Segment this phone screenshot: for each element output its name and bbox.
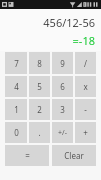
- button[interactable]: Clear: [52, 145, 96, 166]
- button[interactable]: -: [75, 99, 96, 120]
- staticText: 6: [60, 81, 65, 92]
- staticText: 3: [60, 104, 65, 115]
- button[interactable]: 456/12-56: [0, 9, 101, 51]
- other: Calculator: [0, 0, 101, 180]
- button[interactable]: /: [75, 52, 96, 74]
- staticText: 5: [37, 81, 42, 92]
- button[interactable]: 5: [29, 76, 50, 97]
- staticText: 0: [14, 127, 19, 138]
- staticText: 4: [14, 81, 19, 92]
- button[interactable]: 1: [5, 99, 27, 120]
- staticText: 456/12-56: [43, 15, 95, 30]
- staticText: +/-: [58, 128, 67, 138]
- staticText: .: [38, 127, 41, 138]
- button[interactable]: 9: [52, 52, 73, 74]
- button[interactable]: +/-: [52, 122, 73, 143]
- button[interactable]: 2: [29, 99, 50, 120]
- button[interactable]: +: [75, 122, 96, 143]
- staticText: /: [84, 58, 87, 69]
- staticText: -: [84, 104, 87, 115]
- staticText: 2: [37, 104, 42, 115]
- staticText: 7: [14, 58, 19, 69]
- staticText: 8: [37, 58, 42, 69]
- staticText: Clear: [64, 150, 84, 161]
- staticText: =-18: [72, 33, 95, 48]
- staticText: +: [83, 127, 88, 138]
- button[interactable]: 6: [52, 76, 73, 97]
- staticText: =: [25, 150, 30, 161]
- staticText: x: [83, 81, 88, 92]
- button[interactable]: 0: [5, 122, 27, 143]
- button[interactable]: 4: [5, 76, 27, 97]
- staticText: 9: [60, 58, 65, 69]
- button[interactable]: =: [5, 145, 49, 166]
- staticText: 1: [14, 104, 19, 115]
- button[interactable]: 8: [29, 52, 50, 74]
- button[interactable]: .: [29, 122, 50, 143]
- button[interactable]: x: [75, 76, 96, 97]
- button[interactable]: 7: [5, 52, 27, 74]
- button[interactable]: 3: [52, 99, 73, 120]
